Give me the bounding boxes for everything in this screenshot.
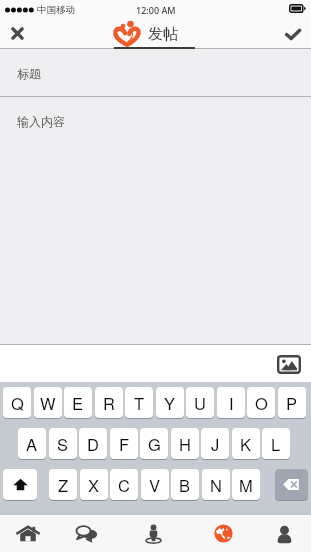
staticText: U	[194, 391, 206, 415]
button[interactable]: W	[34, 387, 62, 418]
button[interactable]: 标题	[0, 49, 311, 97]
staticText: F	[119, 432, 130, 456]
staticText: X	[88, 473, 100, 497]
staticText: N	[210, 473, 222, 497]
button[interactable]: Confirm	[275, 20, 311, 49]
staticText: 中国移动	[37, 4, 75, 16]
staticText: P	[286, 391, 298, 415]
staticText: A	[26, 432, 38, 456]
button[interactable]: H	[171, 428, 199, 459]
button[interactable]: Q	[3, 387, 31, 418]
button[interactable]: B	[171, 469, 199, 500]
staticText: M	[239, 473, 253, 497]
staticText: Q	[11, 391, 24, 415]
button[interactable]: D	[79, 428, 107, 459]
staticText: L	[271, 432, 281, 456]
button[interactable]: V	[141, 469, 169, 500]
button[interactable]: Add image	[274, 349, 304, 379]
staticText: 标题	[17, 66, 41, 81]
staticText: R	[103, 391, 115, 415]
button[interactable]: O	[247, 387, 275, 418]
staticText: H	[179, 432, 191, 456]
button[interactable]: T	[125, 387, 153, 418]
staticText: Z	[58, 473, 69, 497]
staticText: 发帖	[148, 25, 178, 44]
button[interactable]: L	[262, 428, 290, 459]
button[interactable]: C	[110, 469, 138, 500]
staticText: V	[149, 473, 161, 497]
button[interactable]: Discover	[187, 515, 249, 552]
staticText: Y	[164, 391, 176, 415]
button[interactable]: N	[202, 469, 230, 500]
button[interactable]: S	[49, 428, 77, 459]
button[interactable]: K	[232, 428, 260, 459]
staticText: 输入内容	[17, 114, 65, 129]
staticText: B	[179, 473, 191, 497]
button[interactable]: A	[18, 428, 46, 459]
button[interactable]: F	[110, 428, 138, 459]
button[interactable]: J	[201, 428, 229, 459]
button[interactable]: Y	[156, 387, 184, 418]
staticText: G	[148, 432, 161, 456]
button[interactable]: 输入内容	[0, 97, 311, 345]
staticText: J	[211, 432, 220, 456]
staticText: S	[57, 432, 69, 456]
button[interactable]: P	[278, 387, 306, 418]
button[interactable]: M	[232, 469, 260, 500]
button[interactable]: Shift	[3, 469, 37, 500]
staticText: 12:00 AM	[136, 4, 176, 16]
button[interactable]: Close	[0, 20, 36, 49]
staticText: W	[40, 391, 56, 415]
staticText: K	[240, 432, 252, 456]
button[interactable]: Nearby	[124, 515, 187, 552]
staticText: O	[255, 391, 268, 415]
button[interactable]: Z	[49, 469, 77, 500]
staticText: D	[87, 432, 99, 456]
button[interactable]: Backspace	[275, 469, 308, 500]
button[interactable]: E	[64, 387, 92, 418]
button[interactable]: X	[80, 469, 108, 500]
staticText: I	[229, 391, 234, 415]
staticText: E	[72, 391, 84, 415]
button[interactable]: R	[95, 387, 123, 418]
button[interactable]: Profile	[249, 515, 311, 552]
button[interactable]: U	[186, 387, 214, 418]
button[interactable]: I	[217, 387, 245, 418]
button[interactable]: Messages	[62, 515, 124, 552]
button[interactable]: G	[140, 428, 168, 459]
staticText: T	[134, 391, 145, 415]
staticText: C	[118, 473, 130, 497]
button[interactable]: Home	[0, 515, 62, 552]
